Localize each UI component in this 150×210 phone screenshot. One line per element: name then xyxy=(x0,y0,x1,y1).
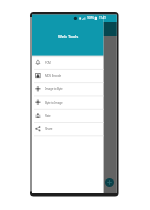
staticText: Byte to Image xyxy=(45,101,63,105)
staticText: Web Tools xyxy=(58,34,79,40)
staticText: Share xyxy=(45,127,53,131)
button[interactable]: MD5 Encode xyxy=(32,69,104,82)
staticText: 100% xyxy=(87,16,94,20)
staticText: FCM xyxy=(45,61,51,65)
button[interactable]: Add xyxy=(105,178,114,187)
button[interactable]: Rate xyxy=(32,109,104,122)
staticText: MD5 Encode xyxy=(45,74,61,78)
button[interactable]: Share xyxy=(32,122,104,135)
staticText: Rate xyxy=(45,114,51,118)
staticText: 11:41 xyxy=(99,16,106,20)
button[interactable]: Byte to Image xyxy=(32,96,104,109)
staticText: Image to Byte xyxy=(45,87,63,91)
button[interactable]: Image to Byte xyxy=(32,82,104,95)
button[interactable]: FCM xyxy=(32,56,104,69)
